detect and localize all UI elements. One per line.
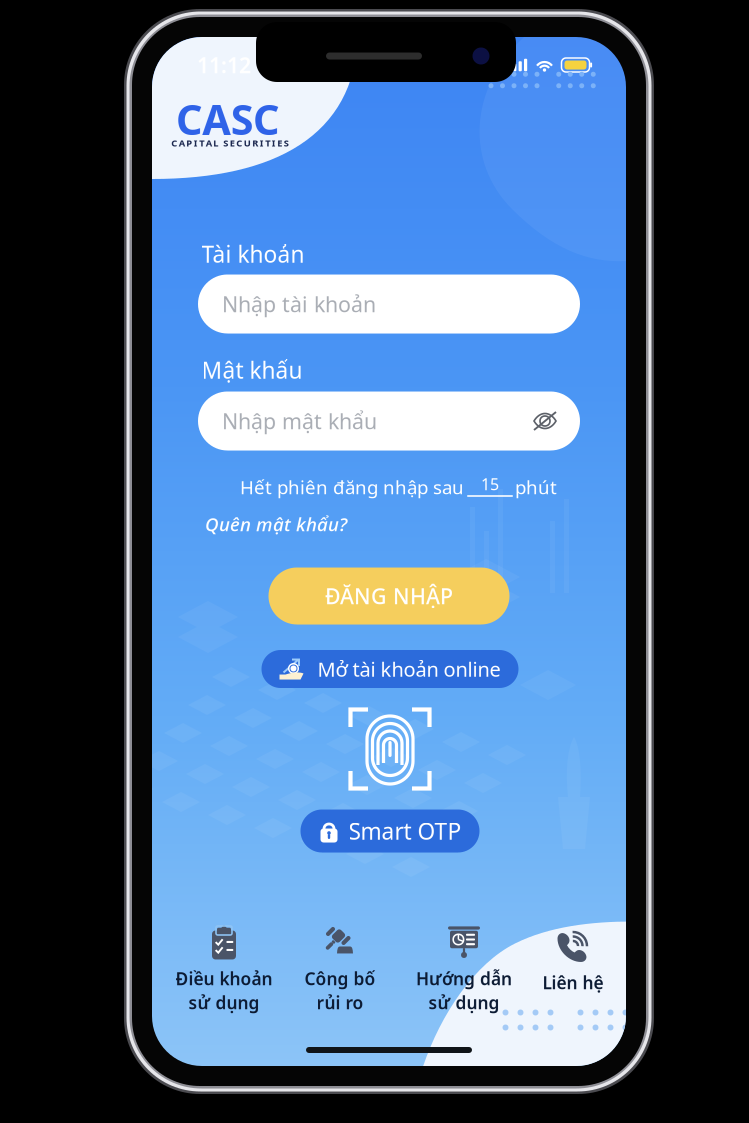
- staticText: Hết phiên đăng nhập sau: [240, 475, 464, 499]
- button[interactable]: Điều khoản: [170, 924, 277, 1014]
- staticText: 11:12: [197, 51, 251, 79]
- staticText: Mở tài khoản online: [317, 656, 500, 682]
- staticText: Công bố: [304, 967, 375, 990]
- staticText: 15: [481, 473, 499, 495]
- staticText: Mật khẩu: [201, 355, 302, 385]
- button[interactable]: Nhập mật khẩu: [198, 391, 580, 450]
- button[interactable]: Mở tài khoản online: [261, 650, 518, 688]
- staticText: Smart OTP: [348, 816, 461, 846]
- staticText: ĐĂNG NHẬP: [325, 582, 453, 610]
- staticText: CASC: [176, 92, 280, 146]
- button[interactable]: Hướng dẫn: [411, 924, 517, 1014]
- staticText: sử dụng: [428, 991, 499, 1014]
- staticText: sử dụng: [188, 991, 259, 1014]
- staticText: phút: [515, 475, 557, 499]
- button[interactable]: ĐĂNG NHẬP: [268, 567, 509, 624]
- staticText: CAPITAL SECURITIES: [171, 137, 289, 149]
- button[interactable]: Công bố: [299, 924, 380, 1014]
- staticText: Quên mật khẩu?: [205, 512, 347, 536]
- staticText: rủi ro: [316, 991, 363, 1014]
- staticText: Điều khoản: [175, 967, 272, 990]
- staticText: Hướng dẫn: [416, 967, 512, 990]
- button[interactable]: Liên hệ: [537, 928, 608, 994]
- staticText: Liên hệ: [542, 971, 603, 994]
- staticText: Nhập tài khoản: [222, 290, 376, 318]
- button[interactable]: Nhập tài khoản: [198, 274, 580, 333]
- button[interactable]: Smart OTP: [300, 809, 479, 852]
- button[interactable]: Quên mật khẩu?: [202, 507, 350, 541]
- staticText: Tài khoản: [201, 239, 304, 269]
- staticText: Nhập mật khẩu: [222, 407, 377, 435]
